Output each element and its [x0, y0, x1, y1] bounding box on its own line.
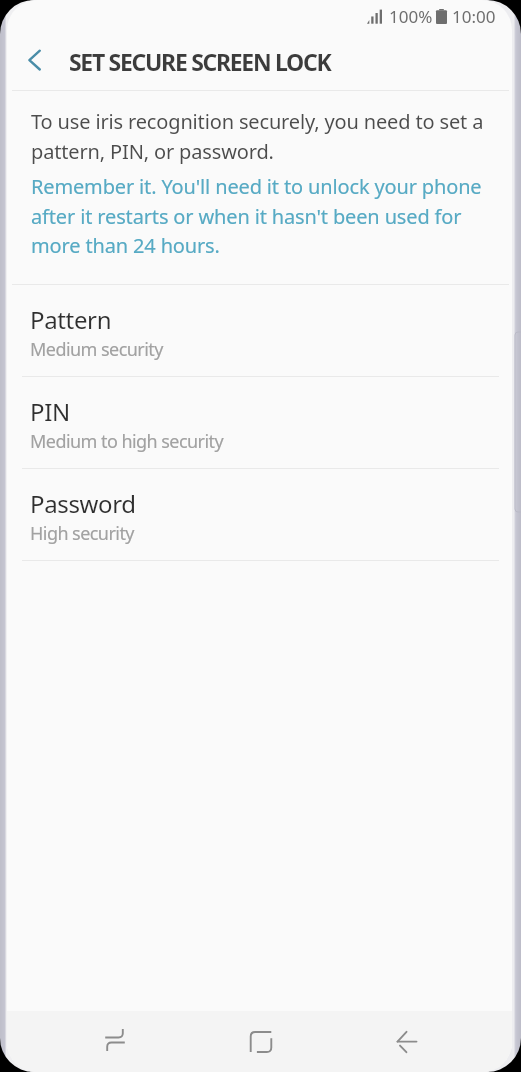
- button[interactable]: PIN: [7, 377, 512, 468]
- staticText: Pattern: [30, 303, 112, 336]
- staticText: Password: [30, 487, 136, 520]
- button[interactable]: Recent apps: [87, 1011, 143, 1072]
- staticText: High security: [30, 521, 134, 546]
- staticText: SET SECURE SCREEN LOCK: [69, 46, 331, 77]
- button[interactable]: Navigate up: [7, 33, 59, 90]
- staticText: 100%: [389, 5, 433, 28]
- staticText: 10:00: [452, 5, 496, 28]
- staticText: Remember it. You'll need it to unlock yo…: [31, 173, 499, 259]
- staticText: Medium security: [30, 337, 163, 362]
- button[interactable]: Password: [7, 469, 512, 560]
- staticText: To use iris recognition securely, you ne…: [31, 108, 499, 165]
- button[interactable]: Pattern: [7, 285, 512, 376]
- staticText: Medium to high security: [30, 429, 224, 454]
- button[interactable]: Back: [379, 1011, 435, 1072]
- button[interactable]: Home: [233, 1011, 289, 1072]
- staticText: PIN: [30, 395, 70, 428]
